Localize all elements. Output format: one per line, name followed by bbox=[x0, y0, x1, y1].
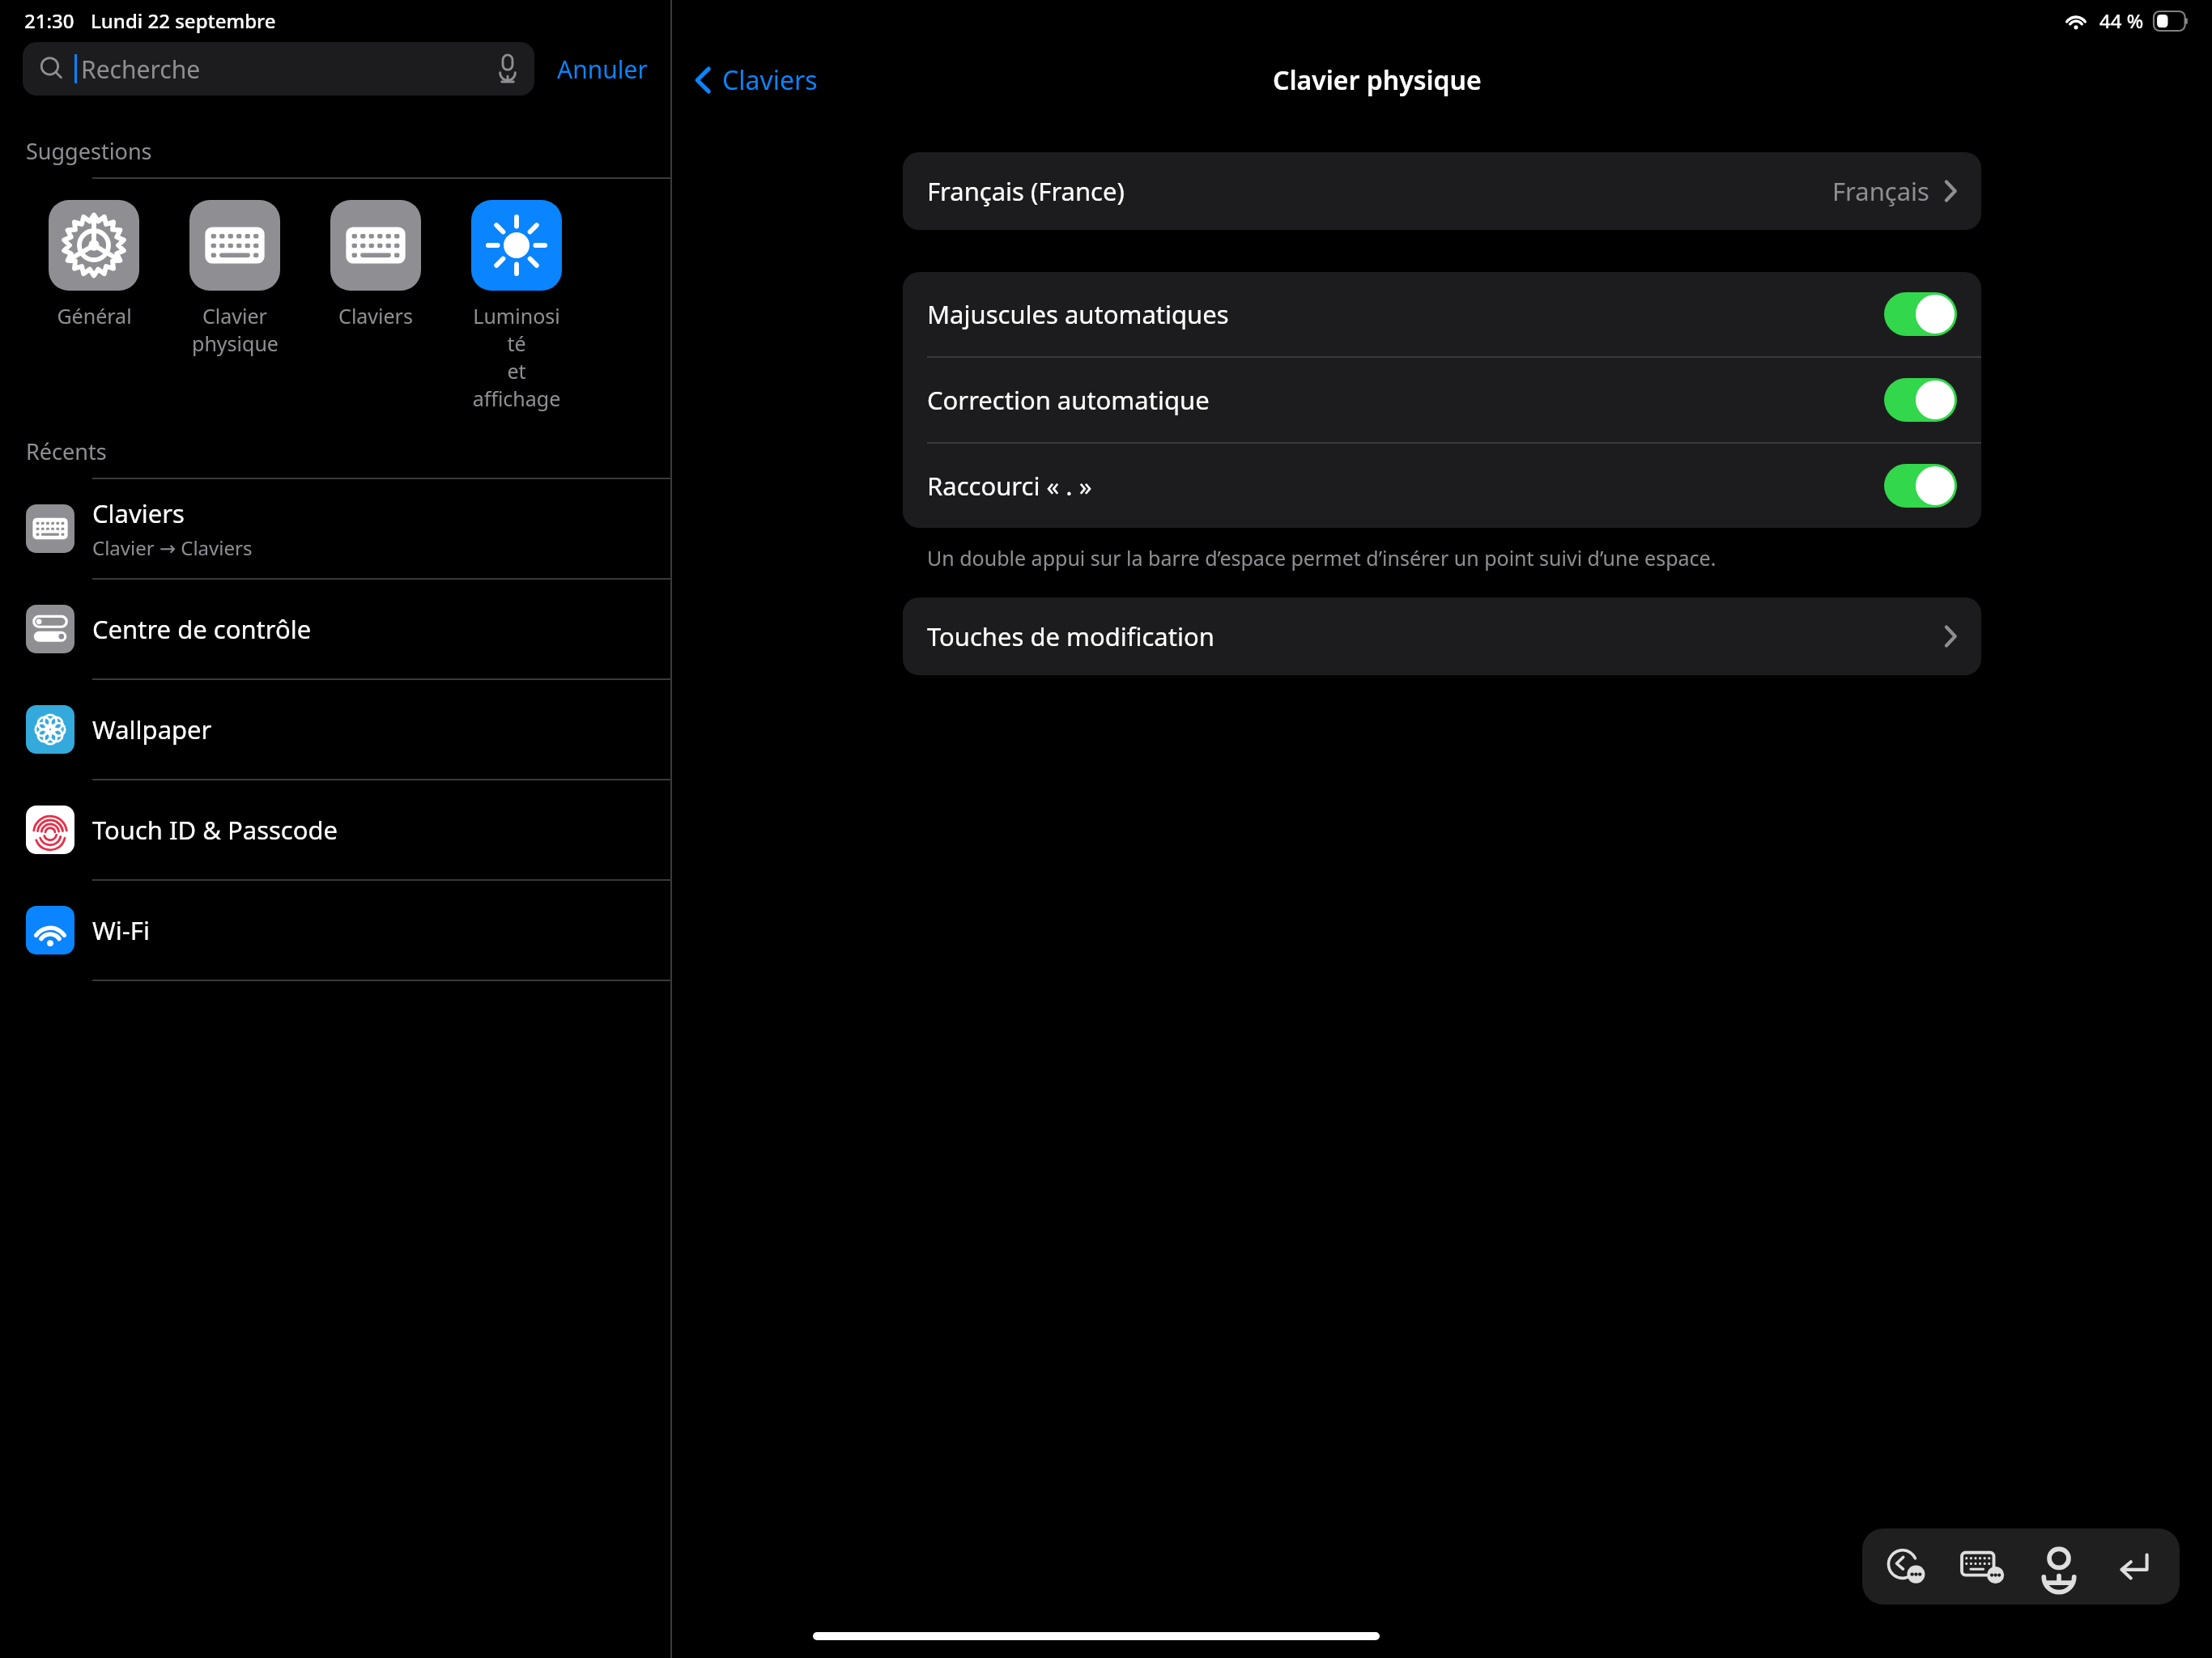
staticText: Wallpaper bbox=[92, 712, 212, 746]
staticText: Luminosité bbox=[471, 302, 562, 357]
staticText: Un double appui sur la barre d’espace pe… bbox=[927, 544, 1716, 572]
button[interactable]: Centre de contrôle bbox=[0, 580, 670, 680]
button[interactable]: Général bbox=[49, 200, 139, 329]
button[interactable]: Majuscules automatiques bbox=[903, 272, 1981, 356]
button[interactable]: Wallpaper bbox=[0, 680, 670, 780]
button[interactable]: Undo bbox=[1877, 1536, 1938, 1597]
button[interactable]: Raccourci « . » bbox=[903, 444, 1981, 528]
staticText: et affichage bbox=[471, 357, 562, 412]
staticText: Recherche bbox=[81, 53, 201, 86]
staticText: Suggestions bbox=[26, 136, 152, 166]
staticText: Touch ID & Passcode bbox=[92, 813, 338, 847]
staticText: Clavier bbox=[202, 302, 267, 329]
button[interactable]: Claviers bbox=[688, 54, 824, 106]
other: Dictate bbox=[497, 53, 518, 84]
staticText: Centre de contrôle bbox=[92, 612, 312, 646]
staticText: Raccourci « . » bbox=[927, 469, 1092, 503]
staticText: Correction automatique bbox=[927, 383, 1210, 417]
button[interactable]: Recherche bbox=[23, 42, 534, 96]
staticText: physique bbox=[192, 329, 279, 357]
staticText: Français (France) bbox=[927, 174, 1125, 208]
button[interactable]: Toggle Raccourci « . » bbox=[1884, 464, 1957, 508]
button[interactable]: Claviers bbox=[0, 479, 670, 580]
button[interactable]: Toggle Majuscules automatiques bbox=[1884, 292, 1957, 336]
button[interactable]: Annuler bbox=[554, 45, 651, 94]
staticText: Majuscules automatiques bbox=[927, 297, 1229, 331]
button[interactable]: Wi-Fi bbox=[0, 881, 670, 981]
button[interactable]: Luminosité bbox=[471, 200, 562, 412]
staticText: Lundi 22 septembre bbox=[91, 7, 276, 34]
staticText: 21:30 bbox=[24, 7, 74, 34]
staticText: Général bbox=[57, 302, 132, 329]
staticText: Clavier → Claviers bbox=[92, 534, 253, 561]
staticText: Annuler bbox=[557, 53, 648, 86]
staticText: Wi-Fi bbox=[92, 913, 150, 947]
button[interactable]: Dictate bbox=[2028, 1536, 2090, 1597]
staticText: Touches de modification bbox=[927, 619, 1214, 653]
staticText: Claviers bbox=[92, 496, 185, 530]
button[interactable]: Correction automatique bbox=[903, 358, 1981, 442]
button[interactable]: Keyboard bbox=[1952, 1536, 2014, 1597]
button[interactable]: Claviers bbox=[330, 200, 421, 329]
staticText: Récents bbox=[26, 436, 107, 466]
button[interactable]: Return bbox=[2104, 1536, 2165, 1597]
staticText: Claviers bbox=[722, 62, 818, 98]
staticText: Claviers bbox=[338, 302, 413, 329]
staticText: 44 % bbox=[2099, 7, 2144, 34]
button[interactable]: Touches de modification bbox=[903, 597, 1981, 675]
button[interactable]: Toggle Correction automatique bbox=[1884, 378, 1957, 422]
staticText: Clavier physique bbox=[1273, 62, 1482, 98]
staticText: Français bbox=[1832, 174, 1929, 208]
button[interactable]: Touch ID & Passcode bbox=[0, 780, 670, 881]
button[interactable]: Français (France) bbox=[903, 152, 1981, 230]
button[interactable]: Clavier bbox=[189, 200, 280, 357]
